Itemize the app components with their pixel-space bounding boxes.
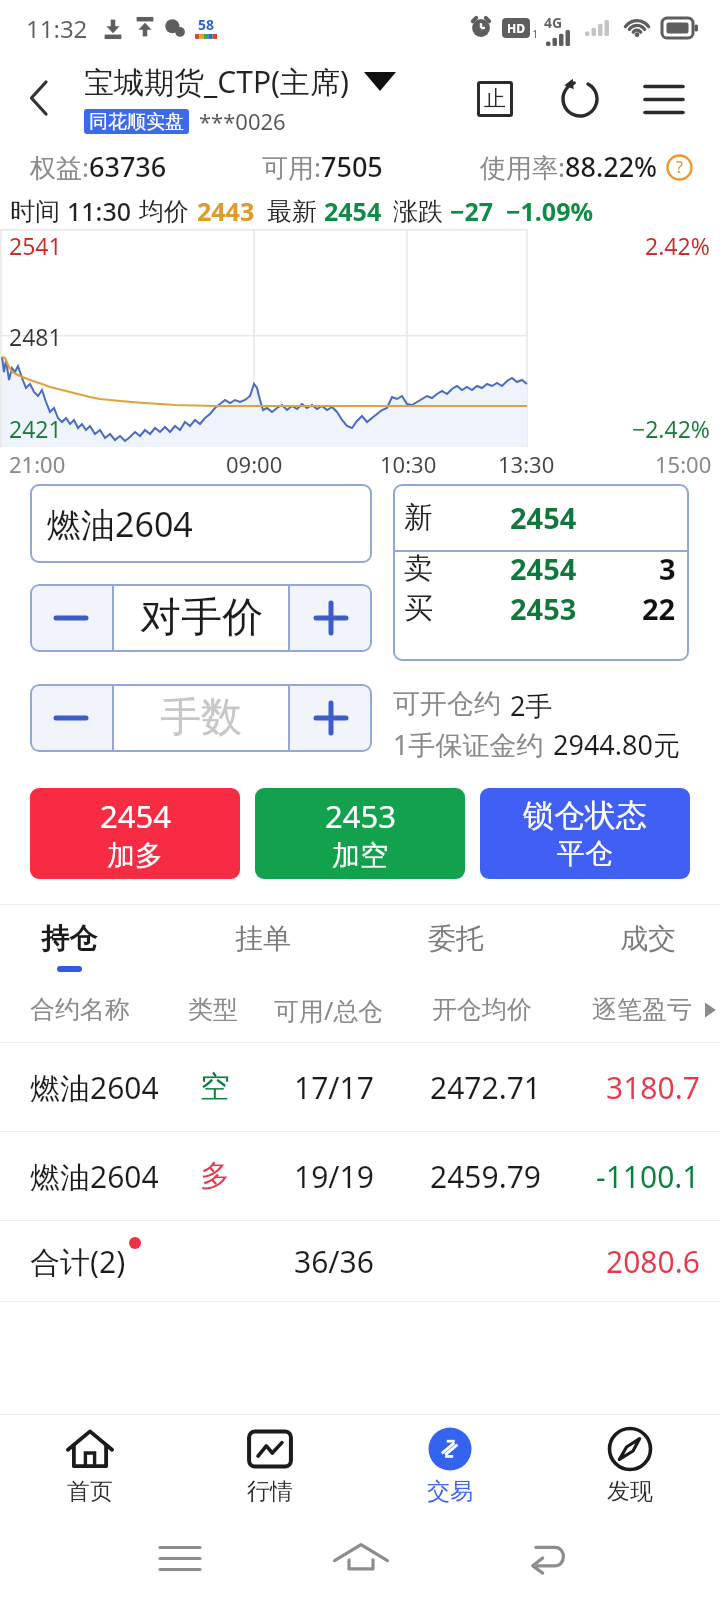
staticText: 最新 — [267, 196, 317, 227]
staticText: 首页 — [67, 1477, 113, 1506]
staticText: 7505 — [321, 148, 383, 185]
staticText: 09:00 — [226, 449, 283, 477]
staticText: −2.42% — [632, 413, 710, 444]
staticText: 持仓 — [41, 921, 97, 956]
staticText: -1100.1 — [596, 1156, 700, 1197]
staticText: 63736 — [89, 148, 167, 185]
staticText: 2454 — [510, 549, 577, 588]
staticText: 加空 — [332, 838, 388, 873]
button[interactable]: Refresh — [552, 71, 608, 127]
button[interactable]: 燃油2604 — [30, 484, 372, 563]
button[interactable]: 对手价 — [114, 584, 288, 652]
staticText: 成交 — [620, 921, 676, 956]
staticText: 止 — [484, 85, 506, 113]
staticText: 2453 — [510, 589, 577, 628]
staticText: 1 — [532, 26, 539, 41]
staticText: 可用: — [262, 149, 321, 185]
button[interactable]: 燃油2604 — [0, 1132, 720, 1220]
staticText: 17/17 — [294, 1067, 374, 1108]
button[interactable]: 燃油2604 — [0, 1043, 720, 1131]
staticText: HD — [507, 20, 525, 36]
staticText: 燃油2604 — [30, 1067, 159, 1108]
staticText: 2459.79 — [430, 1156, 541, 1197]
staticText: 36/36 — [294, 1241, 374, 1282]
button[interactable]: Recent apps — [150, 1528, 210, 1588]
button[interactable]: 持仓 — [7, 905, 131, 978]
staticText: 2541 — [9, 230, 62, 261]
staticText: 逐笔盈亏 — [592, 994, 692, 1025]
staticText: 委托 — [428, 921, 484, 956]
staticText: 合约名称 — [30, 994, 130, 1025]
staticText: 2080.6 — [606, 1241, 700, 1282]
staticText: 2443 — [197, 194, 255, 228]
button[interactable]: 锁仓状态 — [480, 788, 690, 879]
button[interactable]: Increase — [290, 684, 372, 752]
button[interactable]: Decrease — [30, 584, 112, 652]
staticText: 4G — [544, 13, 563, 32]
staticText: 燃油2604 — [47, 501, 193, 547]
button[interactable]: Stop trading — [467, 71, 523, 127]
staticText: 11:32 — [26, 12, 88, 45]
button[interactable]: Increase — [290, 584, 372, 652]
button[interactable]: 合计(2) — [0, 1221, 720, 1301]
staticText: 2421 — [9, 413, 62, 444]
staticText: 交易 — [427, 1477, 473, 1506]
staticText: 2454 — [100, 795, 171, 837]
staticText: 2472.71 — [430, 1067, 541, 1108]
staticText: 11:30 — [67, 194, 132, 228]
staticText: 58 — [198, 15, 215, 34]
staticText: 发现 — [607, 1477, 653, 1506]
staticText: 买 — [404, 590, 433, 627]
staticText: 开仓均价 — [432, 994, 532, 1025]
button[interactable]: 手数 — [114, 684, 288, 752]
button[interactable]: 委托 — [394, 905, 518, 978]
staticText: 可开仓约 — [393, 687, 501, 719]
staticText: 新 — [404, 499, 433, 536]
staticText: 88.22% — [565, 148, 658, 185]
staticText: 2944.80元 — [553, 726, 680, 758]
staticText: 19/19 — [294, 1156, 374, 1197]
button[interactable]: 挂单 — [201, 905, 325, 978]
staticText: 行情 — [247, 1477, 293, 1506]
staticText: 均价 — [139, 196, 189, 227]
staticText: 涨跌 — [393, 196, 443, 227]
staticText: 2454 — [510, 498, 577, 537]
staticText: 合计(2) — [30, 1241, 126, 1282]
button[interactable]: Home — [331, 1528, 391, 1588]
staticText: 使用率: — [480, 149, 565, 185]
button[interactable]: 2454 — [30, 788, 240, 879]
staticText: 3 — [659, 549, 676, 588]
button[interactable]: 发现 — [540, 1415, 720, 1519]
staticText: 2481 — [9, 321, 62, 352]
button[interactable]: 成交 — [586, 905, 710, 978]
staticText: 平仓 — [557, 836, 613, 871]
staticText: ***0026 — [199, 106, 286, 136]
staticText: ? — [676, 156, 683, 178]
button[interactable]: Menu — [636, 71, 692, 127]
staticText: 挂单 — [235, 921, 291, 956]
staticText: 多 — [200, 1157, 230, 1195]
staticText: 2454 — [324, 194, 382, 228]
staticText: −27 — [450, 194, 494, 228]
staticText: 1手保证金约 — [393, 726, 544, 758]
button[interactable]: Decrease — [30, 684, 112, 752]
staticText: −1.09% — [506, 194, 594, 228]
staticText: 宝城期货_CTP(主席) — [84, 61, 350, 102]
staticText: 权益: — [30, 149, 89, 185]
staticText: 2手 — [510, 687, 553, 719]
button[interactable]: Back — [518, 1528, 578, 1588]
button[interactable]: 首页 — [0, 1415, 180, 1519]
staticText: 2453 — [325, 795, 396, 837]
button[interactable]: 2453 — [255, 788, 465, 879]
staticText: 2.42% — [645, 230, 710, 261]
button[interactable]: Back — [0, 56, 78, 140]
staticText: 10:30 — [380, 449, 437, 477]
staticText: 空 — [200, 1068, 230, 1106]
staticText: 燃油2604 — [30, 1156, 159, 1197]
staticText: 3180.7 — [606, 1067, 700, 1108]
staticText: 22 — [642, 589, 676, 628]
staticText: 加多 — [107, 838, 163, 873]
button[interactable]: 交易 — [360, 1415, 540, 1519]
button[interactable]: 行情 — [180, 1415, 360, 1519]
staticText: 21:00 — [9, 449, 66, 477]
